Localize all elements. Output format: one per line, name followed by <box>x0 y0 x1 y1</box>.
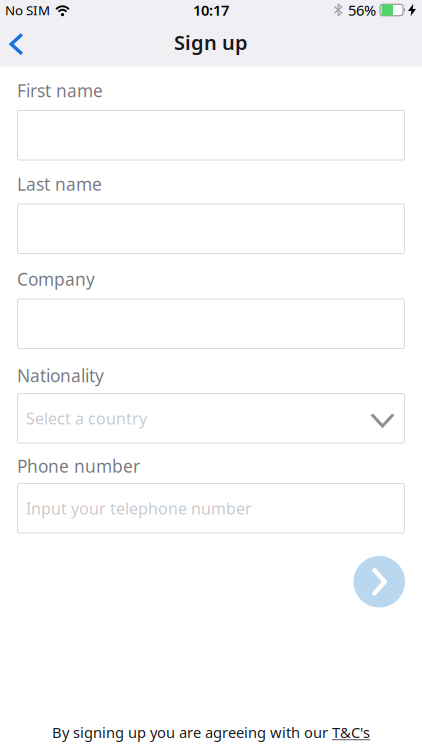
staticText: Last name <box>17 172 102 195</box>
staticText: Phone number <box>17 454 140 477</box>
button[interactable] <box>17 203 405 254</box>
staticText: No SIM <box>5 1 50 19</box>
button[interactable]: Input your telephone number <box>17 483 405 533</box>
button[interactable] <box>0 24 31 65</box>
staticText: Company <box>17 267 95 290</box>
button[interactable] <box>17 298 405 349</box>
staticText: First name <box>17 79 103 102</box>
button[interactable] <box>17 110 405 160</box>
button[interactable]: By signing up you are agreeing with our … <box>52 722 370 750</box>
staticText: Select a country <box>26 408 147 429</box>
staticText: Nationality <box>17 364 104 387</box>
staticText: 56% <box>348 0 376 20</box>
staticText: 10:17 <box>193 0 229 20</box>
staticText: By signing up you are agreeing with our … <box>52 722 370 742</box>
button[interactable] <box>353 556 405 607</box>
staticText: Input your telephone number <box>26 498 252 519</box>
button[interactable]: Select a country <box>17 393 405 443</box>
staticText: Sign up <box>174 29 248 56</box>
